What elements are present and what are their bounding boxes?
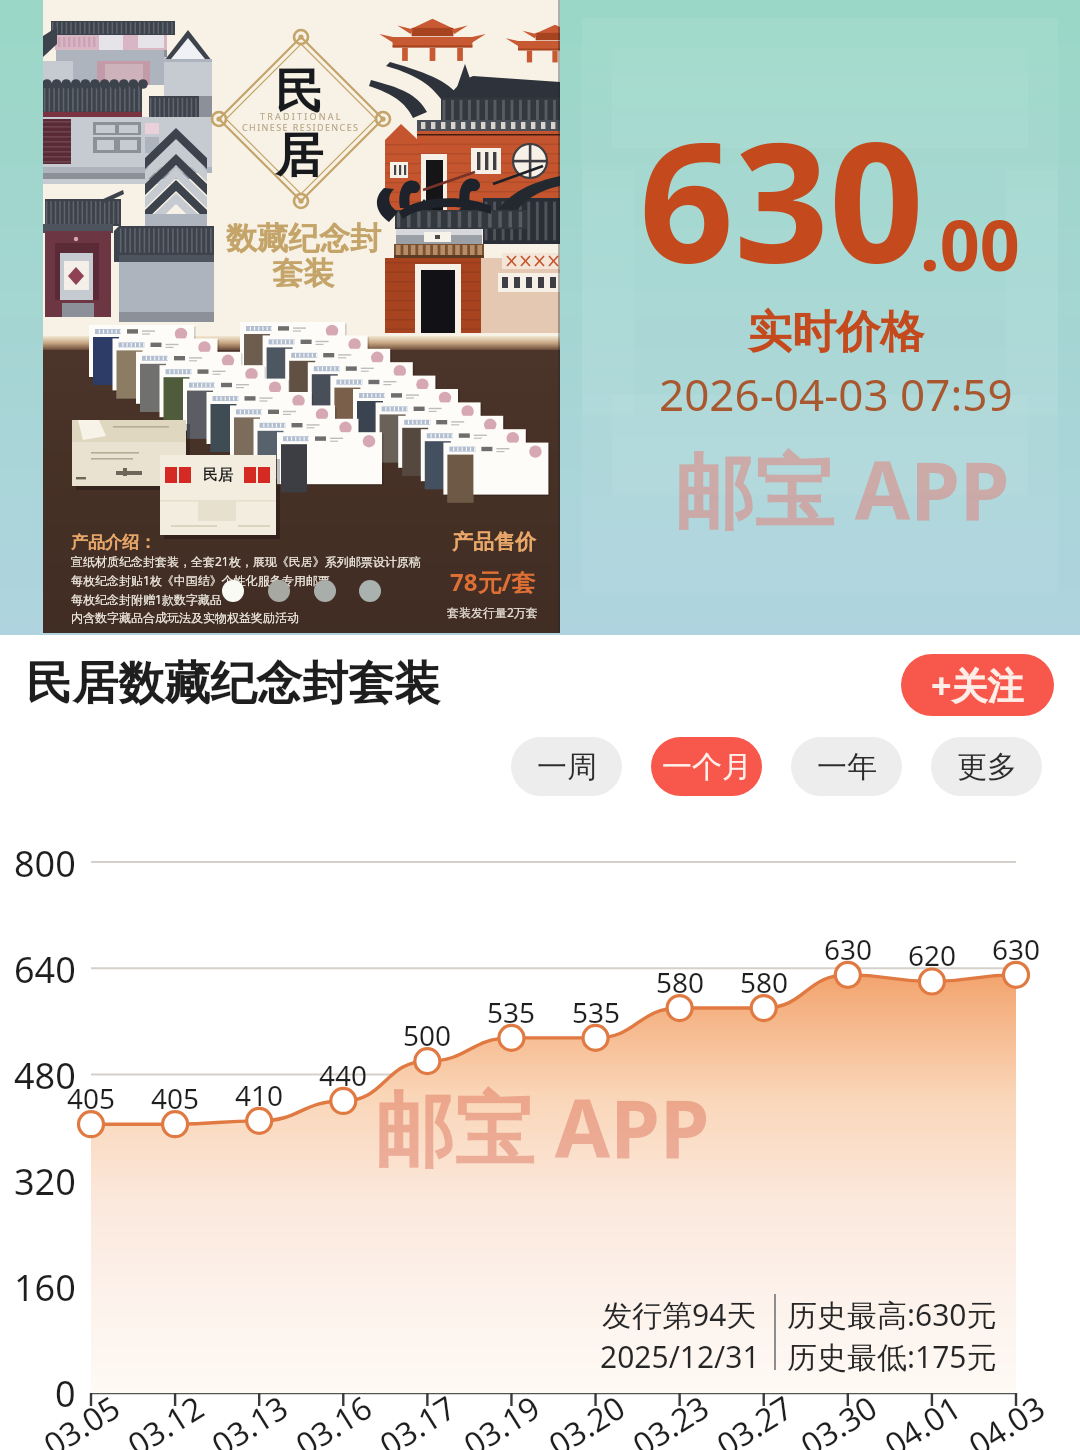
staticText: 800 [14, 839, 76, 888]
staticText: 04.03 [960, 1385, 1053, 1450]
staticText: 内含数字藏品合成玩法及实物权益奖励活动 [71, 610, 299, 625]
staticText: 630 [824, 930, 873, 968]
button[interactable]: 一个月 [651, 737, 762, 796]
staticText: 03.05 [35, 1385, 128, 1450]
staticText: 每枚纪念封贴1枚《中国结》个性化服务专用邮票 [71, 572, 330, 588]
staticText: 320 [14, 1157, 76, 1206]
staticText: 历史最高:630元 [787, 1294, 997, 1335]
staticText: 产品售价 [452, 529, 536, 555]
staticText: +关注 [931, 661, 1024, 710]
staticText: 历史最低:175元 [787, 1336, 997, 1377]
staticText: 更多 [957, 748, 1017, 786]
staticText: 03.13 [203, 1385, 296, 1450]
staticText: 03.17 [371, 1385, 464, 1450]
staticText: 每枚纪念封附赠1款数字藏品 [71, 591, 222, 607]
staticText: 580 [656, 963, 705, 1001]
staticText: 一个月 [662, 748, 752, 786]
staticText: 民居数藏纪念封套装 [26, 655, 440, 713]
staticText: 480 [14, 1051, 76, 1100]
staticText: 宣纸材质纪念封套装，全套21枚，展现《民居》系列邮票设计原稿 [71, 553, 421, 569]
staticText: TRADITIONAL [260, 110, 343, 122]
staticText: 民 [275, 62, 323, 122]
staticText: 0 [55, 1369, 76, 1418]
staticText: 535 [487, 993, 536, 1031]
staticText: 160 [14, 1263, 76, 1312]
staticText: 03.23 [624, 1385, 717, 1450]
staticText: 03.16 [287, 1385, 380, 1450]
button[interactable]: 一周 [511, 737, 622, 796]
staticText: 邮宝 APP [374, 1072, 710, 1181]
staticText: 535 [572, 993, 621, 1031]
button[interactable]: 民居数藏纪念封套装 [20, 643, 460, 713]
button[interactable]: 民居数藏纪念封套装 product image [43, 0, 560, 633]
staticText: 套装 [272, 254, 334, 293]
staticText: 630 [992, 930, 1041, 968]
staticText: 2025/12/31 [600, 1336, 760, 1377]
button[interactable]: 一年 [791, 737, 902, 796]
staticText: 620 [908, 936, 957, 974]
staticText: 一年 [817, 748, 877, 786]
staticText: 630 [639, 85, 924, 311]
staticText: 440 [319, 1056, 368, 1094]
staticText: 套装发行量2万套 [447, 604, 538, 620]
staticText: 产品介绍： [71, 532, 156, 553]
button[interactable]: 更多 [931, 737, 1042, 796]
staticText: 数藏纪念封 [226, 219, 381, 258]
staticText: .00 [920, 196, 1020, 291]
staticText: 一周 [537, 748, 597, 786]
staticText: 邮宝 APP [674, 434, 1010, 543]
staticText: 03.30 [792, 1385, 885, 1450]
staticText: 410 [235, 1076, 284, 1114]
staticText: CHINESE RESIDENCES [242, 121, 360, 133]
staticText: 发行第94天 [602, 1294, 757, 1335]
staticText: 04.01 [876, 1385, 969, 1450]
staticText: 405 [151, 1079, 200, 1117]
staticText: 78元/套 [450, 565, 536, 598]
staticText: 03.12 [119, 1385, 212, 1450]
staticText: 居 [275, 126, 323, 186]
staticText: 03.27 [708, 1385, 801, 1450]
staticText: 640 [14, 945, 76, 994]
button[interactable]: +关注 [901, 654, 1054, 716]
staticText: 500 [403, 1016, 452, 1054]
staticText: 2026-04-03 07:59 [659, 364, 1013, 424]
staticText: 03.20 [540, 1385, 633, 1450]
staticText: 03.19 [455, 1385, 548, 1450]
staticText: 民居 [203, 466, 233, 485]
staticText: 405 [67, 1079, 116, 1117]
staticText: 580 [740, 963, 789, 1001]
staticText: 实时价格 [748, 305, 924, 360]
